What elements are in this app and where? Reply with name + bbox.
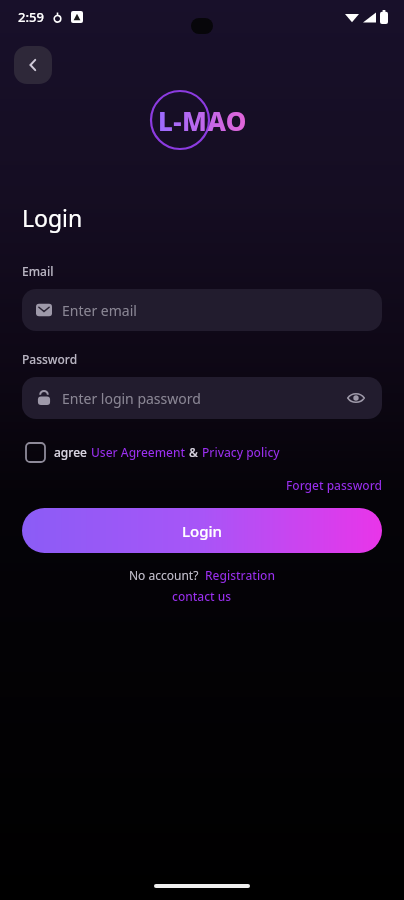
button[interactable]: Forget password [286,477,382,493]
staticText: Email [22,263,54,279]
button[interactable]: Login [22,508,382,553]
staticText: 2:59 [18,8,44,26]
staticText: Password [22,351,78,367]
button[interactable]: Show password [344,386,368,410]
button[interactable]: Registration [205,567,275,583]
staticText: No account? [129,567,205,583]
staticText: L-MAO [158,103,247,138]
button[interactable]: Agree checkbox [22,439,48,465]
button[interactable]: Privacy policy [202,444,280,460]
button[interactable]: Back [14,46,52,84]
staticText: & [186,444,202,460]
staticText: Enter email [62,301,368,320]
staticText: agree [54,444,91,460]
staticText: Login [22,202,83,233]
button[interactable]: Enter login password [22,377,382,419]
button[interactable]: Enter email [22,289,382,331]
staticText: Login [182,521,222,541]
button[interactable]: contact us [172,588,232,604]
staticText: Enter login password [62,389,344,408]
button[interactable]: User Agreement [91,444,186,460]
